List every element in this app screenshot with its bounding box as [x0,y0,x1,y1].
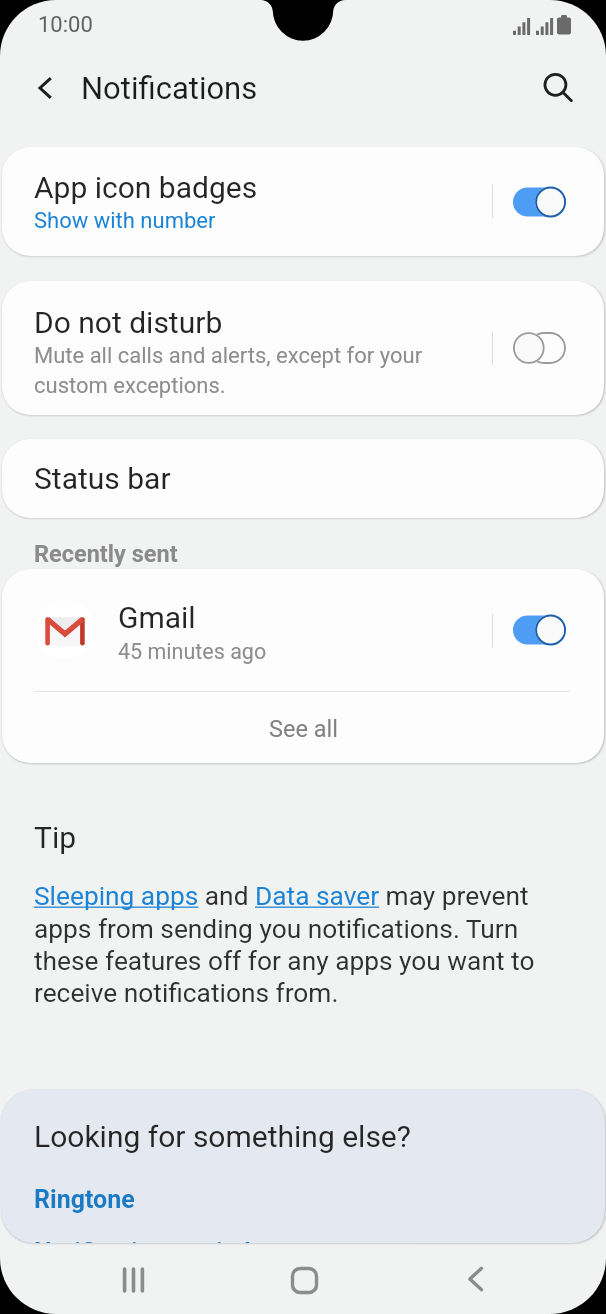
staticText: Sleeping apps and Data saver may prevent… [34,881,576,1008]
button[interactable]: Navigate up [20,62,72,114]
button[interactable]: Gmail [2,569,604,763]
button[interactable]: App icon badges [2,147,604,256]
staticText: See all [269,715,338,743]
staticText: Notifications [81,70,258,106]
button[interactable]: Recent apps [89,1243,173,1314]
staticText: 10:00 [38,12,93,38]
staticText: Mute all calls and alerts, except for yo… [34,343,478,399]
button[interactable]: Home [261,1243,345,1314]
button[interactable]: Do not disturb [2,281,604,415]
staticText: 45 minutes ago [118,639,267,664]
staticText: Recently sent [34,540,178,568]
button[interactable]: Notification reminder [34,1238,274,1243]
button[interactable]: Looking for something else? [1,1089,605,1243]
staticText: Tip [34,820,77,855]
staticText: App icon badges [34,170,258,205]
staticText: Do not disturb [34,305,223,340]
staticText: Gmail [118,600,196,635]
button[interactable]: Turn off [493,590,604,670]
button[interactable]: Turn off [493,162,604,242]
staticText: Show with number [34,208,216,234]
button[interactable]: See all [2,692,604,763]
staticText: Status bar [34,461,171,496]
staticText: Looking for something else? [34,1119,411,1154]
button[interactable]: Back [434,1243,518,1314]
button[interactable]: Search [532,62,584,114]
button[interactable]: Ringtone [34,1185,135,1214]
button[interactable]: Turn on [493,308,604,388]
button[interactable]: Status bar [2,439,604,518]
